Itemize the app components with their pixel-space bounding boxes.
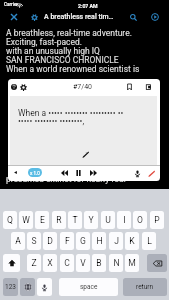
button[interactable]: Settings: [28, 11, 40, 23]
button[interactable]: N: [109, 254, 123, 272]
button[interactable]: I: [117, 211, 131, 229]
button[interactable]: Pause: [72, 167, 84, 179]
button[interactable]: K: [125, 232, 139, 250]
button[interactable]: Backspace: [147, 254, 167, 272]
button[interactable]: H: [92, 232, 106, 250]
button[interactable]: 123: [3, 278, 18, 296]
staticText: 123: [5, 283, 16, 291]
button[interactable]: Share: [143, 81, 155, 93]
staticText: I: [123, 215, 126, 225]
button[interactable]: B: [92, 254, 106, 272]
staticText: ••••• •••••••• ••••••••,: [18, 116, 85, 126]
staticText: C: [64, 258, 70, 268]
staticText: A breathless, real-time adventure.: [6, 28, 132, 38]
button[interactable]: A: [11, 232, 25, 250]
staticText: N: [113, 258, 120, 268]
button[interactable]: M: [125, 254, 139, 272]
staticText: presumed extinct for nearly four: [6, 174, 127, 184]
staticText: A breathless real tim…: [44, 13, 114, 21]
staticText: Q: [7, 215, 13, 225]
staticText: R: [56, 215, 62, 225]
button[interactable]: S: [27, 232, 41, 250]
staticText: H: [96, 236, 103, 246]
button[interactable]: E: [35, 211, 49, 229]
staticText: T: [72, 215, 78, 225]
staticText: When a ••••• •••••••• ••••••••• ••: [18, 108, 124, 118]
staticText: X: [47, 258, 53, 268]
button[interactable]: C: [60, 254, 74, 272]
staticText: U: [105, 215, 111, 225]
button[interactable]: G: [76, 232, 90, 250]
button[interactable]: P: [150, 211, 164, 229]
button[interactable]: Z: [27, 254, 41, 272]
staticText: E: [40, 215, 45, 225]
staticText: with an unusually high IQ: [6, 46, 100, 56]
staticText: D: [47, 236, 53, 246]
button[interactable]: Bookmark: [123, 81, 135, 93]
staticText: space: [80, 283, 98, 291]
button[interactable]: X: [43, 254, 57, 272]
button[interactable]: Microphone: [131, 167, 143, 179]
button[interactable]: J: [109, 232, 123, 250]
staticText: #7/40: [73, 83, 93, 91]
button[interactable]: Settings: [17, 81, 29, 93]
button[interactable]: U: [101, 211, 115, 229]
button[interactable]: Fast forward: [87, 167, 99, 179]
staticText: Exciting, fast-paced.: [6, 37, 83, 47]
staticText: J: [114, 236, 119, 246]
staticText: B: [96, 258, 102, 268]
button[interactable]: F: [60, 232, 74, 250]
button[interactable]: Search: [127, 11, 139, 23]
staticText: G: [80, 236, 86, 246]
staticText: x 1.0: [30, 170, 40, 176]
button[interactable]: Play: [149, 11, 161, 23]
button[interactable]: T: [68, 211, 82, 229]
staticText: O: [137, 215, 143, 225]
button[interactable]: O: [133, 211, 147, 229]
staticText: When a world renowned scientist is: [6, 64, 140, 74]
button[interactable]: Shift: [3, 254, 20, 272]
button[interactable]: return: [123, 278, 167, 296]
button[interactable]: Rewind: [58, 167, 70, 179]
staticText: Carrier: [4, 2, 18, 7]
button[interactable]: Emoji keyboard: [20, 278, 35, 296]
button[interactable]: space: [59, 278, 118, 296]
staticText: A: [15, 236, 21, 246]
staticText: Z: [31, 258, 37, 268]
button[interactable]: Y: [84, 211, 98, 229]
button[interactable]: Help: [8, 81, 20, 93]
staticText: M: [128, 258, 136, 268]
button[interactable]: Previous: [10, 167, 21, 178]
staticText: W: [22, 215, 30, 225]
staticText: SAN FRANCISCO CHRONICLE: [6, 55, 119, 65]
button[interactable]: Dictation: [37, 278, 52, 296]
button[interactable]: Q: [3, 211, 17, 229]
staticText: return: [136, 283, 154, 291]
button[interactable]: x 1.0: [28, 168, 42, 177]
button[interactable]: Close: [8, 11, 20, 23]
button[interactable]: L: [142, 232, 156, 250]
button[interactable]: D: [43, 232, 57, 250]
button[interactable]: R: [52, 211, 66, 229]
staticText: S: [31, 236, 37, 246]
button[interactable]: Edit: [145, 167, 157, 179]
staticText: Y: [88, 215, 94, 225]
staticText: K: [129, 236, 135, 246]
staticText: P: [154, 215, 160, 225]
button[interactable]: V: [76, 254, 90, 272]
button[interactable]: W: [19, 211, 33, 229]
staticText: L: [147, 236, 152, 246]
staticText: 2:07 AM: [78, 3, 98, 9]
button[interactable]: Magic wand: [79, 148, 91, 160]
staticText: F: [65, 236, 70, 246]
staticText: V: [80, 258, 86, 268]
